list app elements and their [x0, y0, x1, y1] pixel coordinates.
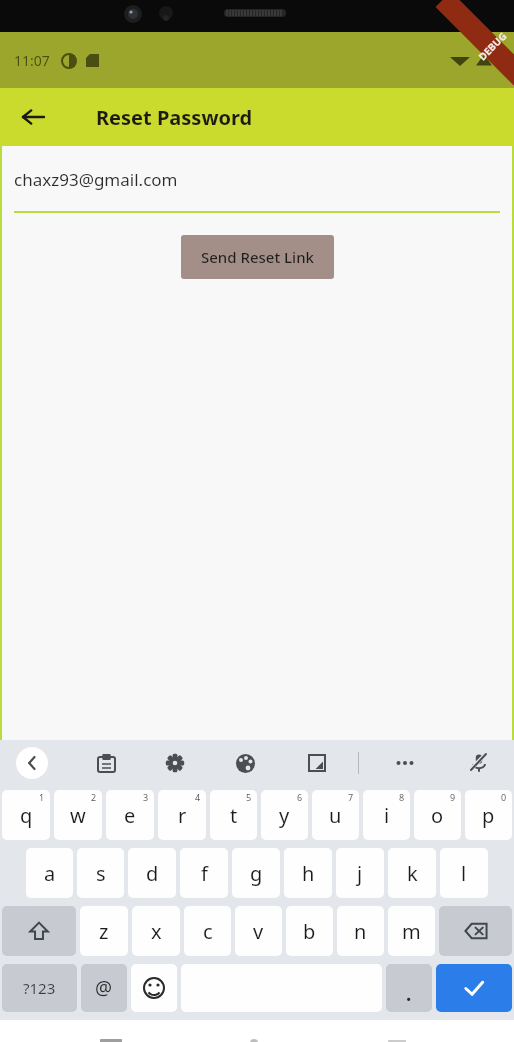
staticText: 11:07	[14, 51, 50, 70]
button[interactable]: c	[184, 906, 231, 956]
button[interactable]: Settings	[158, 746, 192, 780]
button[interactable]: @	[81, 964, 127, 1012]
staticText: r	[178, 802, 187, 829]
staticText: 0	[501, 791, 507, 803]
button[interactable]: p	[465, 790, 512, 840]
button[interactable]: Voice input off	[462, 746, 496, 780]
button[interactable]: h	[284, 848, 332, 898]
staticText: a	[44, 860, 56, 887]
staticText: m	[402, 918, 421, 945]
button[interactable]: w	[54, 790, 102, 840]
button[interactable]: a	[26, 848, 73, 898]
button[interactable]: x	[132, 906, 180, 956]
staticText: 9	[450, 791, 456, 803]
staticText: s	[96, 860, 106, 887]
button[interactable]: Clipboard	[89, 746, 123, 780]
staticText: chaxz93@gmail.com	[14, 168, 178, 191]
button[interactable]: s	[77, 848, 124, 898]
button[interactable]: q	[2, 790, 50, 840]
button[interactable]: r	[158, 790, 206, 840]
button[interactable]: Done	[436, 964, 512, 1012]
staticText: b	[303, 918, 316, 945]
button[interactable]: z	[80, 906, 128, 956]
button[interactable]: d	[128, 848, 176, 898]
button[interactable]: Emoji	[131, 964, 177, 1012]
button[interactable]: Send Reset Link	[181, 235, 334, 279]
staticText: .	[406, 981, 412, 1007]
staticText: 8	[399, 791, 405, 803]
staticText: k	[407, 860, 418, 887]
button[interactable]: Back	[12, 96, 54, 138]
button[interactable]: More options	[388, 746, 422, 780]
button[interactable]: o	[414, 790, 461, 840]
button[interactable]: ?123	[2, 964, 77, 1012]
staticText: q	[20, 802, 33, 829]
button[interactable]: Shift	[2, 906, 76, 956]
staticText: 5	[246, 791, 252, 803]
staticText: 3	[143, 791, 149, 803]
button[interactable]: l	[440, 848, 488, 898]
button[interactable]: j	[336, 848, 384, 898]
staticText: y	[279, 802, 290, 829]
button[interactable]: f	[180, 848, 228, 898]
staticText: x	[151, 918, 162, 945]
staticText: o	[431, 802, 444, 829]
staticText: f	[201, 860, 208, 887]
button[interactable]: b	[286, 906, 333, 956]
staticText: u	[329, 802, 342, 829]
staticText: p	[482, 802, 495, 829]
button[interactable]: u	[312, 790, 359, 840]
staticText: Reset Password	[96, 104, 253, 131]
button[interactable]: e	[106, 790, 154, 840]
button[interactable]: Backspace	[439, 906, 512, 956]
button[interactable]: g	[232, 848, 280, 898]
button[interactable]: y	[261, 790, 308, 840]
staticText: n	[354, 918, 367, 945]
staticText: e	[124, 802, 136, 829]
staticText: g	[250, 860, 263, 887]
staticText: @	[95, 975, 113, 1001]
staticText: j	[357, 860, 363, 887]
staticText: 1	[39, 791, 45, 803]
staticText: d	[146, 860, 159, 887]
staticText: 4	[195, 791, 201, 803]
button[interactable]: i	[363, 790, 410, 840]
button[interactable]: Theme	[228, 746, 262, 780]
button[interactable]: m	[388, 906, 435, 956]
staticText: v	[253, 918, 264, 945]
staticText: z	[99, 918, 109, 945]
staticText: l	[461, 860, 467, 887]
button[interactable]: v	[235, 906, 282, 956]
staticText: 2	[91, 791, 97, 803]
button[interactable]: .	[386, 964, 432, 1012]
staticText: ?123	[23, 978, 56, 998]
staticText: w	[70, 802, 86, 829]
staticText: 6	[297, 791, 303, 803]
button[interactable]: n	[337, 906, 384, 956]
staticText: Send Reset Link	[201, 247, 314, 267]
button[interactable]: Back	[16, 747, 48, 779]
button[interactable]: k	[388, 848, 436, 898]
staticText: t	[230, 802, 238, 829]
staticText: i	[384, 802, 390, 829]
staticText: c	[203, 918, 213, 945]
staticText: 7	[348, 791, 354, 803]
button[interactable]: t	[210, 790, 257, 840]
staticText: DEBUG	[475, 29, 510, 63]
staticText: h	[302, 860, 315, 887]
button[interactable]: Resize keyboard	[300, 746, 334, 780]
